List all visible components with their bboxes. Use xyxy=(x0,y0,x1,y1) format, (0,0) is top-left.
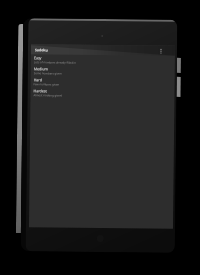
staticText: Hardest xyxy=(33,88,48,93)
button[interactable]: Medium xyxy=(31,65,175,78)
button[interactable]: Hard xyxy=(31,76,175,89)
button[interactable]: Sudoku xyxy=(31,44,175,56)
staticText: Some numbers given xyxy=(34,71,62,75)
staticText: Medium xyxy=(34,66,49,71)
staticText: Hard xyxy=(34,77,43,82)
staticText: Few numbers given xyxy=(34,82,60,86)
button[interactable]: Hardest xyxy=(30,87,174,100)
staticText: Almost nothing given! xyxy=(33,93,62,97)
staticText: Sudoku xyxy=(35,47,48,52)
button[interactable]: More options xyxy=(156,46,166,56)
staticText: Lots of numbers already filled in xyxy=(34,60,77,65)
staticText: Easy xyxy=(34,55,42,60)
button[interactable]: Easy xyxy=(31,54,175,67)
